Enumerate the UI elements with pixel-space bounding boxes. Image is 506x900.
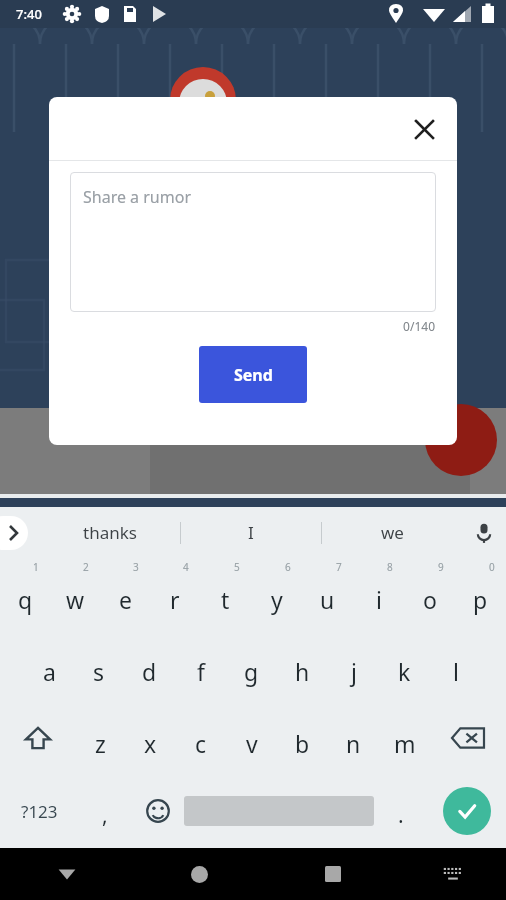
staticText: 0/140: [49, 318, 435, 334]
button[interactable]: we: [322, 507, 462, 558]
button[interactable]: h: [277, 630, 328, 702]
staticText: Send: [234, 364, 273, 386]
button[interactable]: m: [379, 702, 430, 774]
button[interactable]: d: [124, 630, 175, 702]
staticText: 2: [83, 560, 89, 574]
staticText: 9: [438, 560, 444, 574]
staticText: I: [248, 521, 254, 544]
button[interactable]: Enter: [443, 787, 491, 835]
staticText: 6: [285, 560, 291, 574]
button[interactable]: Close: [404, 109, 444, 149]
button[interactable]: Voice input: [462, 511, 506, 555]
staticText: 0: [489, 560, 495, 574]
button[interactable]: l: [430, 630, 481, 702]
staticText: s: [93, 656, 105, 687]
button[interactable]: Switch keyboard: [399, 848, 506, 900]
button[interactable]: 8: [353, 558, 404, 630]
staticText: b: [295, 728, 310, 759]
staticText: j: [351, 656, 357, 687]
button[interactable]: 9: [404, 558, 455, 630]
button[interactable]: ?123: [0, 774, 78, 848]
staticText: u: [320, 584, 335, 615]
staticText: w: [66, 584, 85, 615]
button[interactable]: Home: [133, 848, 266, 900]
staticText: l: [453, 656, 459, 687]
button[interactable]: x: [125, 702, 175, 774]
staticText: h: [295, 656, 310, 687]
staticText: i: [376, 584, 382, 615]
staticText: e: [119, 584, 132, 615]
button[interactable]: z: [75, 702, 125, 774]
button[interactable]: 7: [302, 558, 353, 630]
staticText: we: [381, 521, 404, 544]
button[interactable]: v: [226, 702, 277, 774]
staticText: 7: [336, 560, 342, 574]
button[interactable]: Backspace: [430, 702, 506, 774]
button[interactable]: ,: [78, 774, 131, 848]
staticText: ,: [102, 801, 108, 830]
staticText: .: [398, 801, 404, 830]
button[interactable]: s: [74, 630, 124, 702]
button[interactable]: .: [374, 774, 427, 848]
button[interactable]: 6: [251, 558, 302, 630]
button[interactable]: 2: [50, 558, 100, 630]
staticText: v: [246, 728, 258, 759]
staticText: 4: [183, 560, 189, 574]
button[interactable]: Emoji: [131, 774, 184, 848]
button[interactable]: g: [226, 630, 277, 702]
button[interactable]: f: [175, 630, 226, 702]
button[interactable]: j: [328, 630, 379, 702]
staticText: d: [142, 656, 157, 687]
button[interactable]: Back: [0, 848, 133, 900]
button[interactable]: 5: [200, 558, 251, 630]
staticText: c: [195, 728, 207, 759]
button[interactable]: 0: [455, 558, 506, 630]
staticText: n: [346, 728, 361, 759]
staticText: p: [473, 584, 488, 615]
button[interactable]: 3: [100, 558, 150, 630]
button[interactable]: a: [24, 630, 74, 702]
button[interactable]: k: [379, 630, 430, 702]
button[interactable]: I: [181, 507, 321, 558]
staticText: k: [398, 656, 411, 687]
staticText: Share a rumor: [83, 186, 192, 208]
staticText: a: [43, 656, 56, 687]
button[interactable]: 4: [150, 558, 200, 630]
staticText: 8: [387, 560, 393, 574]
button[interactable]: Send: [199, 346, 307, 403]
button[interactable]: Share a rumor: [70, 172, 436, 312]
staticText: f: [197, 656, 205, 687]
button[interactable]: c: [175, 702, 226, 774]
staticText: x: [144, 728, 157, 759]
staticText: m: [394, 728, 416, 759]
button[interactable]: Recents: [266, 848, 399, 900]
staticText: y: [271, 584, 283, 615]
staticText: 3: [133, 560, 139, 574]
button[interactable]: n: [328, 702, 379, 774]
staticText: 1: [33, 560, 39, 574]
staticText: g: [244, 656, 259, 687]
button[interactable]: More suggestions: [0, 516, 28, 550]
staticText: t: [221, 584, 230, 615]
staticText: 5: [234, 560, 240, 574]
staticText: r: [170, 584, 180, 615]
button[interactable]: Shift: [0, 702, 75, 774]
button[interactable]: b: [277, 702, 328, 774]
button[interactable]: 1: [0, 558, 50, 630]
staticText: o: [423, 584, 437, 615]
staticText: z: [95, 728, 106, 759]
staticText: 7:40: [16, 5, 42, 23]
staticText: q: [18, 584, 33, 615]
button[interactable]: thanks: [40, 507, 180, 558]
staticText: thanks: [83, 521, 137, 544]
staticText: ?123: [21, 800, 58, 823]
